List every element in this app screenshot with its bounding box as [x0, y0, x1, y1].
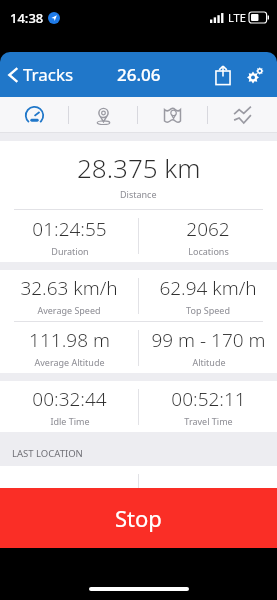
staticText: Tracks [23, 63, 74, 86]
staticText: 26.06 [117, 63, 161, 86]
button[interactable]: Chart [208, 97, 277, 133]
button[interactable]: 01:24:55 [0, 210, 138, 262]
staticText: Duration [51, 245, 89, 257]
staticText: 32.006572 [162, 482, 254, 508]
staticText: LAST LOCATION [12, 447, 83, 460]
button[interactable]: Share [209, 59, 237, 91]
staticText: 49.438550 [23, 482, 115, 508]
button[interactable]: Speed [0, 97, 68, 133]
staticText: 00:52:11 [171, 386, 246, 412]
button[interactable]: 32.63 km/h [0, 270, 138, 321]
staticText: LTE [228, 10, 246, 25]
staticText: 62.94 km/h [159, 275, 257, 301]
staticText: Stop [115, 503, 162, 533]
button[interactable]: 62.94 km/h [139, 270, 277, 321]
button[interactable]: Stop [0, 488, 277, 548]
staticText: Idle Time [50, 415, 90, 427]
staticText: Average Altitude [34, 356, 105, 368]
button[interactable]: 111.98 m [0, 322, 138, 373]
button[interactable]: 2062 [139, 210, 277, 262]
staticText: Average Speed [37, 304, 101, 316]
button[interactable]: 32.006572 [139, 466, 277, 517]
button[interactable]: 00:32:44 [0, 381, 138, 432]
button[interactable]: Map [138, 97, 207, 133]
staticText: Distance [120, 188, 157, 200]
staticText: 28.375 km [77, 150, 201, 185]
staticText: 01:24:55 [32, 216, 107, 242]
staticText: 00:32:44 [32, 386, 107, 412]
button[interactable]: 49.438550 [0, 466, 138, 517]
button[interactable]: 00:52:11 [139, 381, 277, 432]
staticText: Top Speed [186, 304, 230, 316]
button[interactable]: Locations [69, 97, 137, 133]
staticText: 32.63 km/h [20, 275, 118, 301]
staticText: Altitude [192, 356, 226, 368]
button[interactable]: 99 m - 170 m [139, 322, 277, 373]
staticText: Locations [188, 245, 229, 257]
staticText: 14:38 [10, 9, 44, 27]
button[interactable]: Settings [239, 59, 271, 91]
button[interactable]: 28.375 km [0, 150, 277, 200]
button[interactable]: Tracks [0, 57, 82, 92]
staticText: 2062 [186, 216, 230, 242]
staticText: 99 m - 170 m [151, 327, 266, 353]
staticText: Travel Time [184, 415, 233, 427]
staticText: 111.98 m [29, 327, 110, 353]
